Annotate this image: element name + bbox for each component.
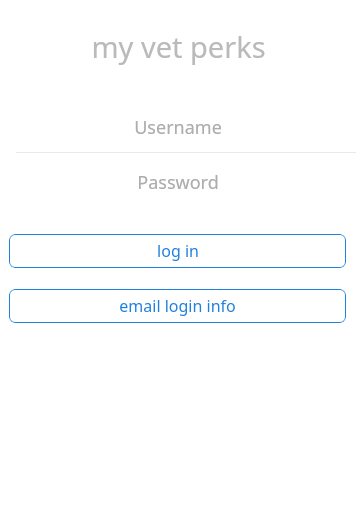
button[interactable]: Password: [0, 169, 356, 195]
button[interactable]: log in: [9, 234, 346, 268]
button[interactable]: email login info: [9, 289, 346, 323]
staticText: Password: [137, 170, 219, 195]
staticText: email login info: [119, 295, 236, 317]
staticText: my vet perks: [91, 27, 266, 66]
staticText: log in: [157, 240, 199, 262]
staticText: Username: [134, 115, 222, 140]
button[interactable]: Username: [0, 114, 356, 140]
